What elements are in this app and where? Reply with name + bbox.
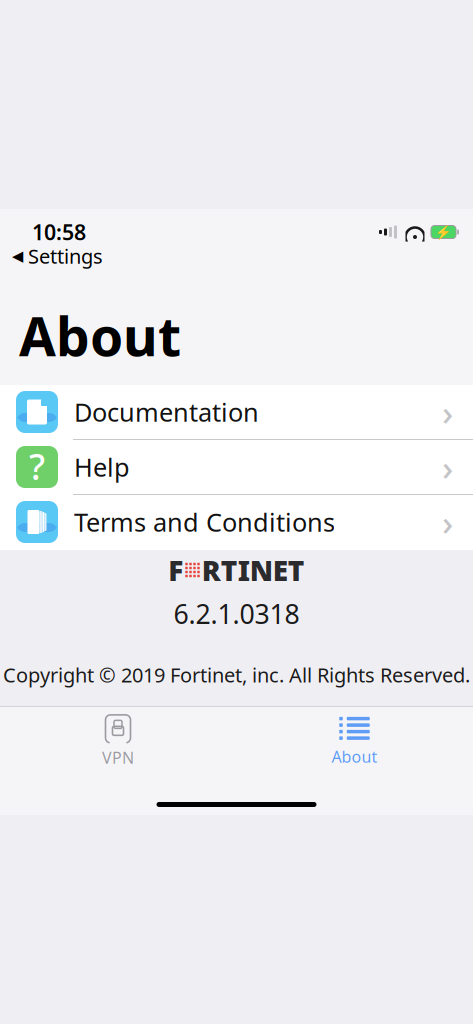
staticText: Documentation [74,395,259,429]
staticText: › [442,444,453,490]
staticText: Help [74,450,130,484]
button[interactable]: Terms and Conditions [0,495,473,550]
staticText: RTINET [202,551,305,589]
staticText: › [442,499,453,545]
staticText: ⚡ [435,224,452,240]
staticText: F [168,551,183,589]
staticText: About [331,746,377,767]
staticText: 6.2.1.0318 [173,596,299,631]
staticText: ◀ [12,248,23,264]
staticText: Terms and Conditions [74,505,335,539]
staticText: About [19,300,181,371]
staticText: 10:58 [32,218,86,246]
button[interactable]: ◀ [0,245,473,267]
staticText: ? [29,442,45,490]
button[interactable]: VPN [0,714,236,768]
staticText: › [442,389,453,435]
button[interactable]: Documentation [0,385,473,440]
staticText: VPN [102,747,134,768]
staticText: Copyright © 2019 Fortinet, inc. All Righ… [3,661,470,688]
staticText: Settings [28,243,103,269]
button[interactable]: About [236,714,473,768]
button[interactable]: ? [0,440,473,495]
